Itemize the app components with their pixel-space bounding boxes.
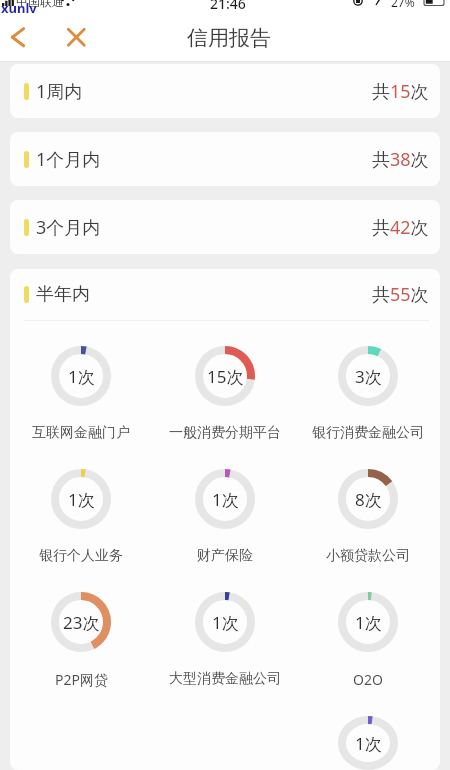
staticText: 互联网金融门户 [32, 424, 130, 442]
staticText: 银行消费金融公司 [312, 424, 424, 442]
staticText: 8次 [355, 488, 382, 511]
staticText: 15次 [207, 365, 244, 388]
button[interactable]: 3个月内 [10, 200, 440, 254]
staticText: 1周内 [36, 79, 83, 104]
staticText: 大型消费金融公司 [169, 670, 281, 688]
staticText: O2O [353, 670, 383, 689]
staticText: 中国联通 [16, 0, 64, 9]
staticText: 1次 [68, 365, 95, 388]
staticText: 半年内 [36, 283, 90, 306]
staticText: 1个月内 [36, 147, 101, 172]
staticText: 1次 [212, 488, 239, 511]
staticText: 共38次 [372, 147, 429, 172]
staticText: 3个月内 [36, 215, 101, 240]
button[interactable]: 1周内 [10, 64, 440, 118]
staticText: 银行个人业务 [39, 547, 123, 565]
staticText: xunlv [1, 0, 37, 17]
staticText: 23次 [63, 611, 100, 634]
button[interactable]: 1个月内 [10, 132, 440, 186]
staticText: 21:46 [210, 0, 246, 13]
staticText: 一般消费分期平台 [169, 424, 281, 442]
staticText: 3次 [355, 365, 382, 388]
button[interactable]: Close [58, 19, 95, 61]
staticText: 1次 [355, 611, 382, 634]
staticText: 共55次 [372, 282, 429, 307]
staticText: 财产保险 [197, 547, 253, 565]
staticText: 1次 [68, 488, 95, 511]
staticText: 共15次 [372, 79, 429, 104]
staticText: 小额贷款公司 [326, 547, 410, 565]
staticText: 信用报告 [187, 25, 271, 51]
button[interactable]: Back [0, 19, 36, 61]
staticText: 1次 [212, 611, 239, 634]
staticText: 共42次 [372, 215, 429, 240]
staticText: 27% [391, 0, 415, 10]
staticText: P2P网贷 [55, 670, 108, 689]
staticText: 1次 [355, 732, 382, 755]
